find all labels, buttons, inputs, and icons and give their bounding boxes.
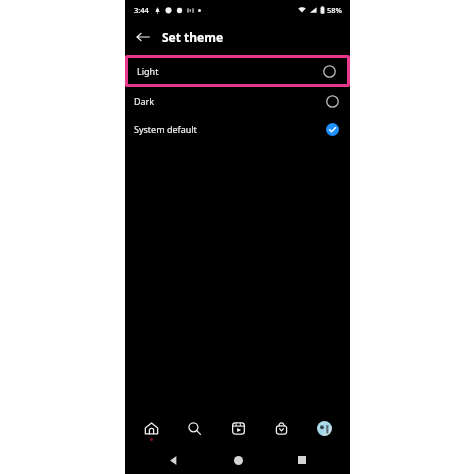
- button[interactable]: Shop: [264, 412, 298, 445]
- button[interactable]: Dark: [125, 87, 350, 115]
- staticText: 58%: [327, 5, 342, 15]
- button[interactable]: Light: [128, 58, 347, 84]
- button[interactable]: Recent apps: [285, 446, 319, 474]
- staticText: Light: [137, 65, 323, 77]
- button[interactable]: Home: [134, 412, 168, 445]
- button[interactable]: Back: [156, 446, 190, 474]
- button[interactable]: Profile: [307, 412, 341, 445]
- button[interactable]: Search: [177, 412, 211, 445]
- staticText: System default: [134, 123, 326, 135]
- staticText: 3:44: [134, 5, 149, 15]
- button[interactable]: Back: [130, 24, 156, 50]
- button[interactable]: Reels: [221, 412, 255, 445]
- staticText: Set theme: [162, 29, 224, 45]
- button[interactable]: System default: [125, 115, 350, 143]
- staticText: Dark: [134, 95, 326, 107]
- button[interactable]: Home: [221, 446, 255, 474]
